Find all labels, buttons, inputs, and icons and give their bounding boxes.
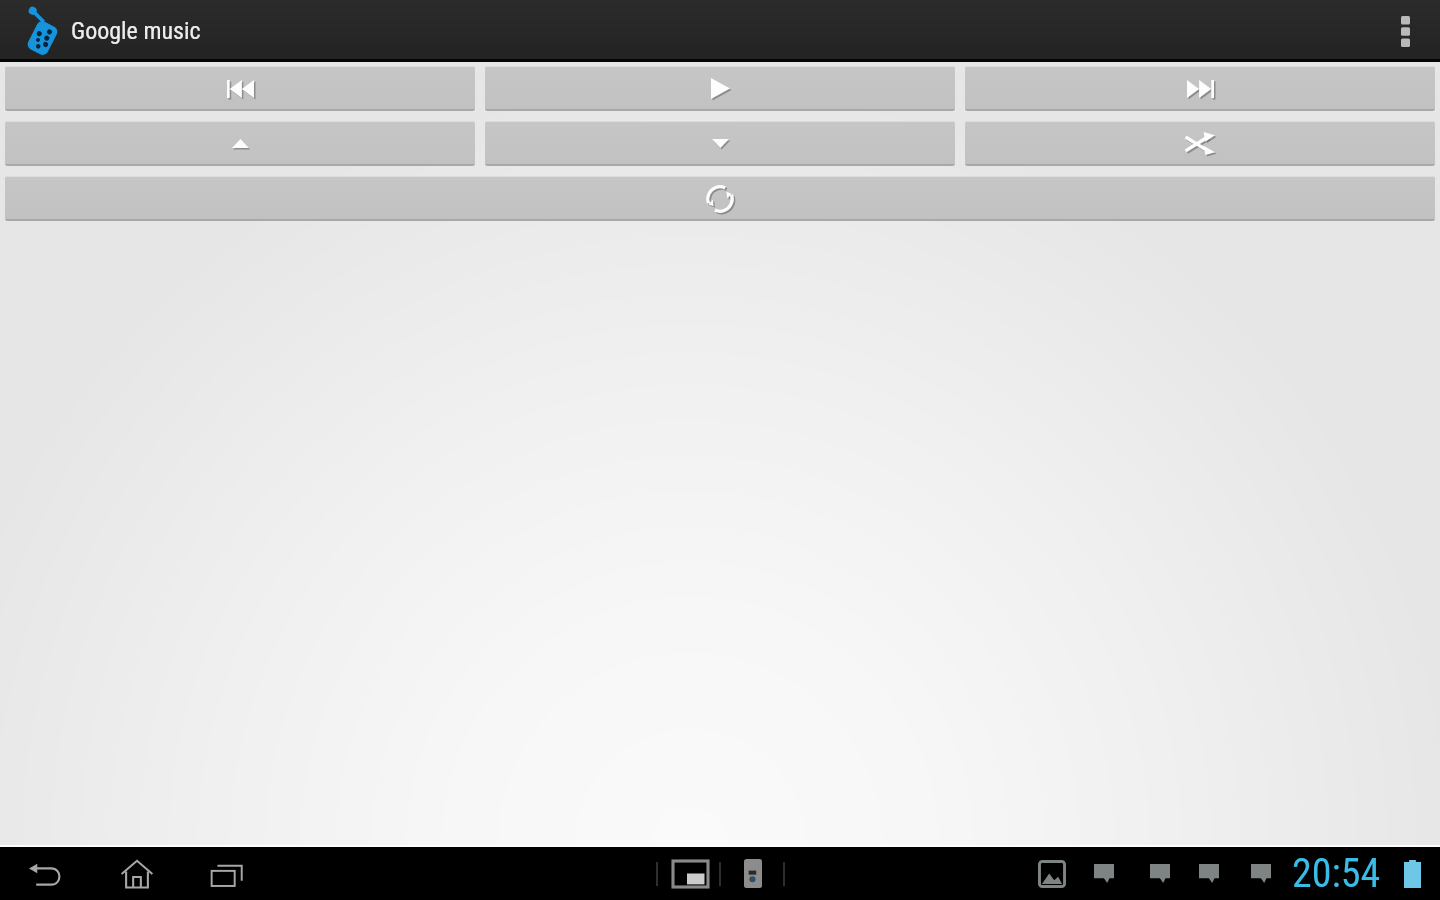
staticText: Google music [71, 17, 201, 45]
button[interactable]: Volume up [5, 121, 475, 166]
staticText: 20:54 [1292, 850, 1381, 897]
button[interactable]: Back [2, 847, 92, 900]
button[interactable]: Volume down [485, 121, 955, 166]
button[interactable]: More options [1370, 0, 1440, 62]
button[interactable]: Next [965, 66, 1435, 111]
button[interactable]: Recent apps [182, 847, 272, 900]
button[interactable]: Home [92, 847, 182, 900]
button[interactable]: Previous [5, 66, 475, 111]
button[interactable]: Play [485, 66, 955, 111]
button[interactable]: Repeat [5, 176, 1435, 221]
button[interactable]: Shuffle [965, 121, 1435, 166]
